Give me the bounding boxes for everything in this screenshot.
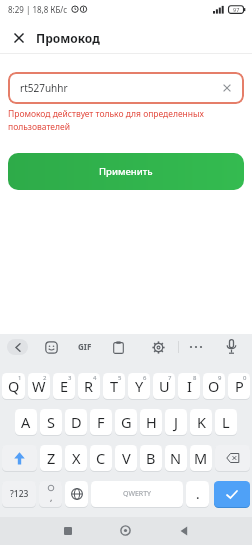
staticText: 2: [43, 374, 47, 382]
button[interactable]: Q: [2, 373, 25, 400]
button[interactable]: E: [53, 373, 75, 400]
button[interactable]: D: [65, 409, 87, 436]
staticText: 3: [68, 374, 72, 382]
staticText: ,: [50, 491, 53, 503]
button[interactable]: R: [78, 373, 100, 400]
button[interactable]: Z: [40, 445, 62, 472]
staticText: T: [110, 376, 119, 396]
staticText: X: [72, 448, 81, 468]
button[interactable]: GIF: [78, 341, 92, 352]
staticText: U: [159, 376, 170, 396]
button[interactable]: K: [190, 409, 212, 436]
button[interactable]: U: [153, 373, 175, 400]
staticText: ?123: [10, 488, 29, 500]
staticText: M: [194, 448, 208, 468]
staticText: .: [196, 485, 200, 503]
button[interactable]: [119, 524, 132, 537]
button[interactable]: .: [186, 481, 209, 508]
button[interactable]: C: [90, 445, 112, 472]
button[interactable]: L: [215, 409, 237, 436]
button[interactable]: N: [165, 445, 187, 472]
staticText: D: [71, 412, 82, 432]
button[interactable]: [177, 524, 190, 537]
staticText: 7: [168, 374, 172, 382]
staticText: 8:29 | 18,8 КБ/с: [8, 4, 68, 15]
button[interactable]: B: [140, 445, 162, 472]
button[interactable]: [113, 341, 124, 354]
button[interactable]: [226, 339, 237, 355]
staticText: 9: [218, 374, 222, 382]
staticText: Q: [8, 376, 20, 396]
button[interactable]: [215, 445, 250, 472]
staticText: 8: [193, 374, 197, 382]
staticText: L: [222, 412, 230, 432]
button[interactable]: G: [115, 409, 137, 436]
button[interactable]: Применить: [8, 153, 244, 190]
staticText: QWERTY: [123, 489, 152, 499]
button[interactable]: W: [28, 373, 50, 400]
button[interactable]: O: [203, 373, 225, 400]
button[interactable]: Y: [128, 373, 150, 400]
staticText: Z: [47, 448, 56, 468]
button[interactable]: rt527uhhr: [8, 72, 244, 104]
staticText: 4: [93, 374, 97, 382]
staticText: C: [96, 448, 106, 468]
staticText: rt527uhhr: [20, 81, 68, 95]
button[interactable]: [214, 481, 250, 508]
button[interactable]: H: [140, 409, 162, 436]
staticText: 1: [18, 374, 22, 382]
button[interactable]: [7, 339, 28, 355]
button[interactable]: [0, 22, 34, 53]
button[interactable]: ?123: [2, 481, 36, 508]
staticText: 5: [118, 374, 122, 382]
staticText: 0: [243, 374, 247, 382]
staticText: W: [32, 376, 46, 396]
button[interactable]: QWERTY: [91, 481, 183, 508]
staticText: Промокод действует только для определенн…: [8, 108, 204, 132]
staticText: R: [84, 376, 94, 396]
button[interactable]: M: [190, 445, 212, 472]
button[interactable]: I: [178, 373, 200, 400]
staticText: Применить: [99, 165, 153, 178]
staticText: 6: [143, 374, 147, 382]
staticText: J: [174, 412, 178, 432]
button[interactable]: [61, 524, 74, 537]
staticText: Промокод: [36, 30, 100, 46]
staticText: E: [60, 376, 69, 396]
button[interactable]: X: [65, 445, 87, 472]
staticText: S: [47, 412, 55, 432]
staticText: G: [121, 412, 132, 432]
button[interactable]: V: [115, 445, 137, 472]
button[interactable]: F: [90, 409, 112, 436]
staticText: H: [146, 412, 157, 432]
staticText: O: [208, 376, 220, 396]
staticText: K: [197, 412, 206, 432]
button[interactable]: T: [103, 373, 125, 400]
button[interactable]: [65, 481, 88, 508]
staticText: B: [146, 448, 156, 468]
button[interactable]: J: [165, 409, 187, 436]
button[interactable]: [152, 341, 165, 354]
button[interactable]: [189, 345, 203, 349]
staticText: P: [235, 376, 244, 396]
button[interactable]: S: [40, 409, 62, 436]
staticText: N: [170, 448, 182, 468]
staticText: V: [122, 448, 131, 468]
button[interactable]: ,: [39, 481, 62, 508]
staticText: 97: [233, 6, 240, 13]
staticText: A: [21, 412, 31, 432]
button[interactable]: P: [228, 373, 250, 400]
staticText: I: [187, 376, 192, 396]
button[interactable]: A: [15, 409, 37, 436]
staticText: Y: [135, 376, 144, 396]
button[interactable]: [2, 445, 37, 472]
button[interactable]: [45, 341, 58, 354]
staticText: F: [97, 412, 105, 432]
staticText: GIF: [78, 341, 92, 352]
